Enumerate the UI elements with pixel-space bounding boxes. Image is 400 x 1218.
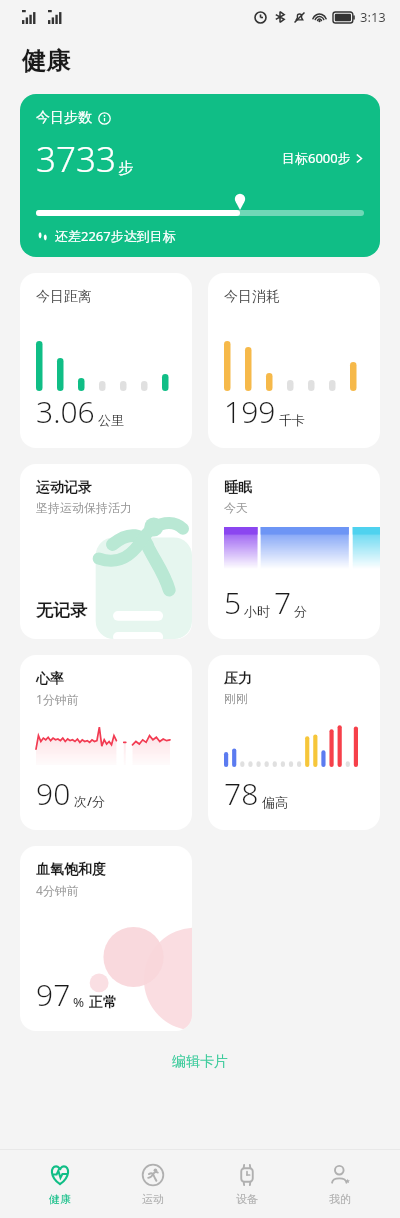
staticText: 还差2267步达到目标 [55, 227, 176, 245]
staticText: 78 [224, 773, 259, 814]
staticText: 5 [224, 582, 242, 623]
staticText: 心率 [36, 670, 64, 688]
staticText: 健康 [22, 46, 70, 76]
button[interactable]: 我的 [306, 1157, 374, 1212]
staticText: 设备 [236, 1192, 258, 1206]
staticText: 目标6000步 [282, 149, 351, 167]
staticText: 小时 [244, 603, 270, 619]
button[interactable]: 编辑卡片 [152, 1047, 248, 1077]
staticText: 4分钟前 [36, 882, 79, 898]
button[interactable]: 运动记录 [20, 464, 192, 639]
staticText: 刚刚 [224, 691, 248, 706]
staticText: 97 [36, 974, 71, 1015]
button[interactable]: 健康 [26, 1157, 94, 1212]
staticText: 睡眠 [224, 479, 252, 497]
staticText: 编辑卡片 [172, 1053, 228, 1071]
button[interactable]: 设备 [213, 1157, 281, 1212]
staticText: 血氧饱和度 [36, 861, 106, 879]
staticText: 今天 [224, 500, 248, 515]
button[interactable]: 今日距离 [20, 273, 192, 448]
staticText: 1分钟前 [36, 691, 79, 707]
staticText: 健康 [49, 1192, 71, 1206]
staticText: 3:13 [360, 8, 386, 26]
button[interactable]: 血氧饱和度 [20, 846, 192, 1031]
staticText: 运动 [142, 1192, 164, 1206]
staticText: % [73, 993, 85, 1011]
staticText: 运动记录 [36, 479, 92, 497]
staticText: 90 [36, 773, 71, 814]
staticText: 次/分 [74, 792, 106, 810]
staticText: 我的 [329, 1192, 351, 1206]
staticText: 无记录 [36, 600, 87, 621]
staticText: 正常 [89, 994, 117, 1012]
staticText: 7 [274, 582, 292, 623]
button[interactable]: 今日消耗 [208, 273, 380, 448]
button[interactable]: 目标6000步 [282, 149, 364, 169]
button[interactable]: 睡眠 [208, 464, 380, 639]
staticText: 步 [118, 159, 133, 178]
staticText: 今日步数 [36, 109, 92, 127]
staticText: 3.06 [36, 391, 95, 432]
staticText: 199 [224, 391, 276, 432]
staticText: 公里 [98, 412, 124, 428]
staticText: 分 [294, 603, 307, 619]
button[interactable]: 运动 [119, 1157, 187, 1212]
staticText: 坚持运动保持活力 [36, 500, 132, 515]
button[interactable]: 今日步数 [20, 94, 380, 257]
staticText: 今日距离 [36, 288, 92, 306]
button[interactable]: 压力 [208, 655, 380, 830]
staticText: 压力 [224, 670, 252, 688]
staticText: 今日消耗 [224, 288, 280, 306]
staticText: 偏高 [262, 794, 288, 810]
staticText: 千卡 [279, 412, 305, 428]
button[interactable]: 心率 [20, 655, 192, 830]
staticText: 3733 [36, 135, 116, 183]
